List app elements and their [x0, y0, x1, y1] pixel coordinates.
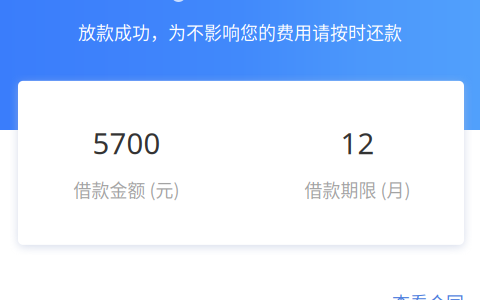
staticText: 借款期限 (月)	[304, 176, 410, 202]
button[interactable]: 查看合同	[392, 290, 464, 300]
staticText: 放款成功，为不影响您的费用请按时还款	[78, 19, 402, 45]
staticText: 5700	[92, 123, 160, 162]
staticText: 12	[340, 123, 374, 162]
staticText: 查看合同	[392, 290, 464, 300]
staticText: 借款金额 (元)	[73, 176, 179, 202]
